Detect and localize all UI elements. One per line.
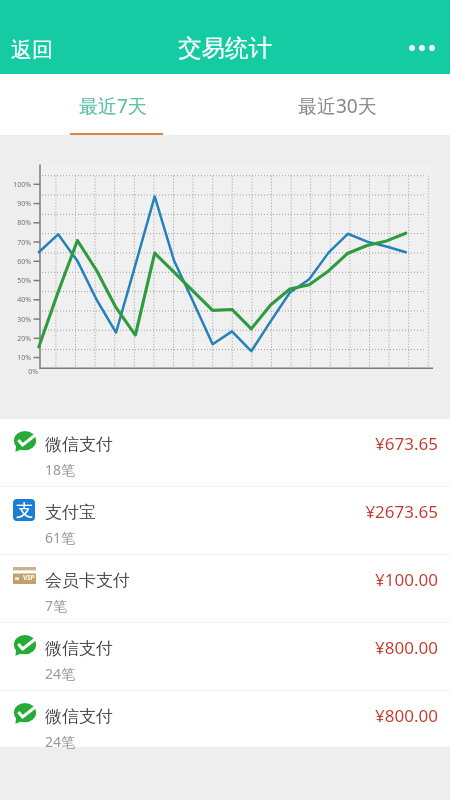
staticText: 18笔 [45,460,76,479]
staticText: 80% [0,218,31,228]
staticText: 40% [0,295,31,305]
button[interactable]: VIP [0,555,450,622]
staticText: 微信支付 [45,706,113,727]
staticText: VIP [23,573,35,583]
staticText: 20% [0,334,31,344]
staticText: 会员卡支付 [45,570,130,591]
staticText: 30% [0,315,31,325]
staticText: 0% [0,367,38,377]
button[interactable]: 最近30天 [225,74,450,135]
button[interactable]: 微信支付 [0,623,450,690]
staticText: 微信支付 [45,434,113,455]
staticText: 支付宝 [45,502,96,523]
staticText: 支 [16,500,33,521]
staticText: 24笔 [45,732,76,751]
staticText: 70% [0,238,31,248]
button[interactable]: 微信支付 [0,419,450,486]
staticText: 交易统计 [178,33,272,63]
staticText: ¥2673.65 [0,500,438,523]
button[interactable]: 返回 [0,31,63,69]
staticText: 90% [0,199,31,209]
button[interactable]: 最近7天 [0,74,225,135]
staticText: 最近30天 [298,93,377,119]
staticText: 60% [0,257,31,267]
button[interactable]: 支 [0,487,450,554]
staticText: 7笔 [45,596,68,615]
staticText: 100% [0,180,31,190]
staticText: 返回 [11,37,53,63]
staticText: 24笔 [45,664,76,683]
staticText: 10% [0,353,31,363]
button[interactable]: More options [399,28,445,68]
staticText: 最近7天 [79,93,147,119]
staticText: ¥800.00 [0,704,438,727]
staticText: ¥100.00 [0,568,438,591]
staticText: 61笔 [45,528,76,547]
staticText: 50% [0,276,31,286]
staticText: 微信支付 [45,638,113,659]
staticText: ¥673.65 [0,432,438,455]
button[interactable]: 微信支付 [0,691,450,747]
staticText: ¥800.00 [0,636,438,659]
